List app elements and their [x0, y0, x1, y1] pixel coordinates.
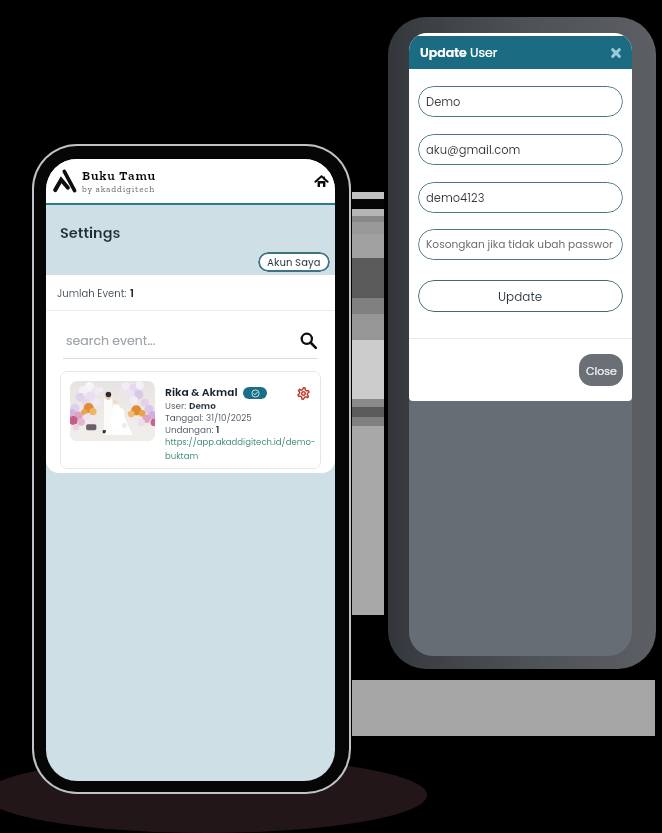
- button[interactable]: Search: [300, 332, 317, 349]
- staticText: Close: [586, 363, 617, 378]
- staticText: demo4123: [426, 190, 485, 206]
- staticText: aku@gmail.com: [426, 142, 521, 158]
- button[interactable]: Kosongkan jika tidak ubah passwor: [418, 229, 623, 260]
- staticText: Demo: [189, 400, 216, 412]
- button[interactable]: Rika & Akmal: [60, 371, 321, 469]
- staticText: Update: [498, 288, 543, 305]
- button[interactable]: demo4123: [418, 182, 623, 213]
- staticText: 31/10/2025: [206, 412, 252, 424]
- button[interactable]: Close dialog: [610, 47, 622, 59]
- button[interactable]: aku@gmail.com: [418, 134, 623, 165]
- button[interactable]: Akun Saya: [258, 252, 330, 272]
- button[interactable]: Home: [315, 175, 328, 188]
- button[interactable]: Demo: [418, 86, 623, 117]
- staticText: Rika & Akmal: [165, 385, 238, 400]
- staticText: Demo: [426, 94, 461, 110]
- staticText: Tanggal:: [165, 412, 206, 424]
- staticText: Akun Saya: [267, 255, 321, 269]
- staticText: 1: [130, 286, 134, 300]
- staticText: 1: [216, 424, 220, 436]
- staticText: Buku Tamu: [82, 168, 156, 184]
- button[interactable]: Update: [418, 280, 623, 312]
- staticText: Update: [420, 44, 470, 61]
- staticText: Settings: [60, 223, 121, 243]
- staticText: by akaddigitech: [82, 184, 156, 195]
- staticText: search event...: [66, 332, 156, 349]
- staticText: User:: [165, 400, 189, 412]
- staticText: User: [470, 44, 498, 61]
- staticText: Jumlah Event:: [57, 286, 130, 300]
- staticText: https://app.akaddigitech.id/demo-buktam: [165, 436, 319, 462]
- button[interactable]: Event settings: [297, 387, 310, 400]
- staticText: Undangan:: [165, 424, 216, 436]
- staticText: Kosongkan jika tidak ubah passwor: [426, 237, 613, 252]
- button[interactable]: Close: [579, 354, 623, 386]
